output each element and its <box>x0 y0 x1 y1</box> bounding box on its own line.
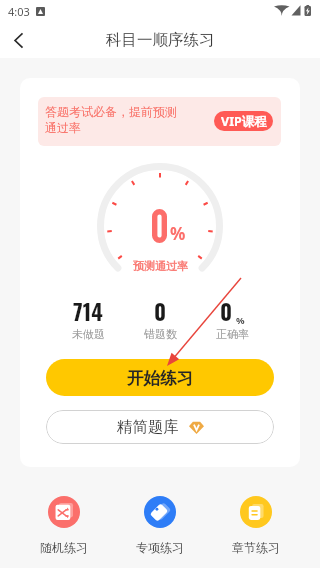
staticText: % <box>236 314 245 327</box>
button[interactable]: 答题考试必备，提前预测 通过率 <box>38 97 281 146</box>
staticText: 开始练习 <box>127 368 193 389</box>
button[interactable]: 章节练习 <box>208 496 304 555</box>
staticText: 714 <box>73 295 103 328</box>
staticText: 科目一顺序练习 <box>106 30 215 50</box>
button[interactable]: 专项练习 <box>112 496 208 555</box>
staticText: 随机练习 <box>40 540 88 555</box>
staticText: 专项练习 <box>136 540 184 555</box>
staticText: 精简题库 <box>117 417 179 437</box>
staticText: VIP课程 <box>221 113 267 130</box>
staticText: 预测通过率 <box>133 259 188 273</box>
button[interactable]: 开始练习 <box>46 359 274 396</box>
button[interactable]: 精简题库 <box>46 410 274 444</box>
staticText: 错题数 <box>144 327 177 341</box>
staticText: 章节练习 <box>232 540 280 555</box>
staticText: 答题考试必备，提前预测 通过率 <box>45 104 177 136</box>
staticText: 4:03 <box>8 4 30 19</box>
staticText: 0 <box>154 295 167 328</box>
staticText: 0 <box>220 295 233 328</box>
button[interactable]: 随机练习 <box>16 496 112 555</box>
button[interactable]: Back <box>0 22 36 58</box>
staticText: 正确率 <box>216 327 249 341</box>
staticText: 未做题 <box>72 327 105 341</box>
staticText: % <box>170 222 186 245</box>
